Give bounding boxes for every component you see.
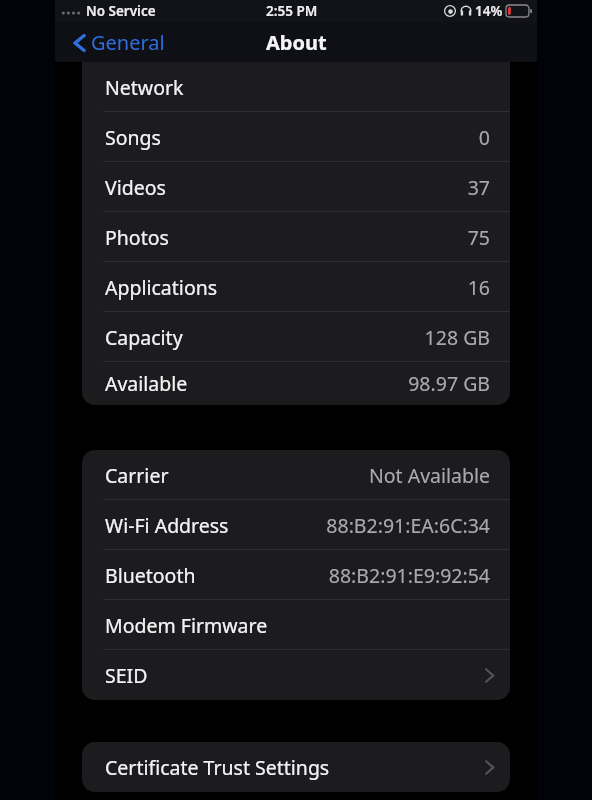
staticText: Bluetooth <box>105 562 196 589</box>
staticText: Songs <box>105 124 161 151</box>
staticText: 2:55 PM <box>266 2 318 20</box>
staticText: No Service <box>86 2 156 20</box>
button[interactable]: General <box>69 25 169 60</box>
button[interactable]: SEID <box>82 650 510 700</box>
button[interactable]: Applications <box>82 262 510 312</box>
staticText: About <box>266 29 327 56</box>
button[interactable]: Network <box>82 62 510 112</box>
button[interactable]: Wi-Fi Address <box>82 500 510 550</box>
button[interactable]: Certificate Trust Settings <box>82 742 510 792</box>
staticText: 128 GB <box>424 324 490 351</box>
button[interactable]: Photos <box>82 212 510 262</box>
button[interactable]: Capacity <box>82 312 510 362</box>
staticText: 75 <box>467 224 490 251</box>
staticText: 88:B2:91:EA:6C:34 <box>326 512 490 539</box>
staticText: Network <box>105 74 184 101</box>
staticText: Certificate Trust Settings <box>105 754 330 781</box>
staticText: Available <box>105 370 188 397</box>
button[interactable]: Modem Firmware <box>82 600 510 650</box>
staticText: Carrier <box>105 462 169 489</box>
staticText: Wi-Fi Address <box>105 512 229 539</box>
staticText: Capacity <box>105 324 183 351</box>
staticText: Not Available <box>368 462 490 489</box>
staticText: General <box>91 29 165 56</box>
staticText: 98.97 GB <box>408 370 490 397</box>
button[interactable]: Carrier <box>82 450 510 500</box>
staticText: 37 <box>467 174 490 201</box>
button[interactable]: Songs <box>82 112 510 162</box>
staticText: 14% <box>475 2 503 20</box>
staticText: 16 <box>467 274 490 301</box>
staticText: Applications <box>105 274 218 301</box>
staticText: SEID <box>105 662 148 689</box>
staticText: 88:B2:91:E9:92:54 <box>328 562 490 589</box>
button[interactable]: Available <box>82 362 510 405</box>
staticText: 0 <box>478 124 490 151</box>
button[interactable]: Videos <box>82 162 510 212</box>
staticText: Modem Firmware <box>105 612 268 639</box>
staticText: Videos <box>105 174 166 201</box>
button[interactable]: Bluetooth <box>82 550 510 600</box>
staticText: Photos <box>105 224 169 251</box>
